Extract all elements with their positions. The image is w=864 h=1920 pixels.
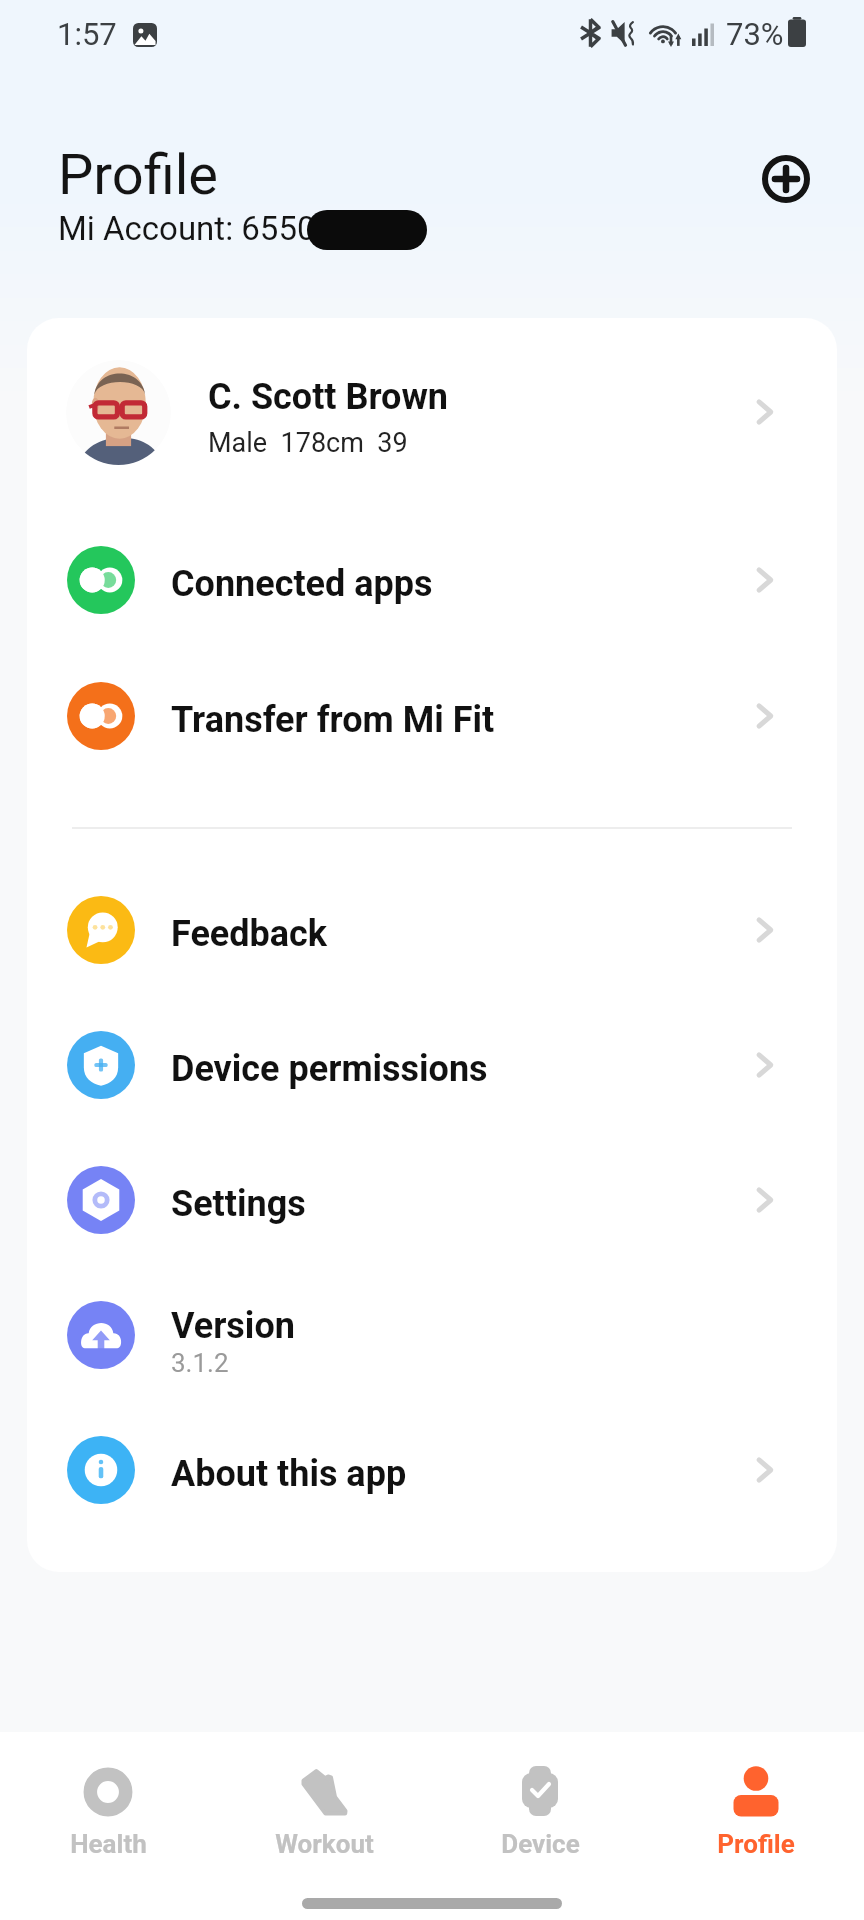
staticText: Health bbox=[70, 1829, 147, 1859]
button[interactable]: About this app bbox=[27, 1402, 837, 1537]
staticText: Settings bbox=[171, 1183, 306, 1225]
button[interactable]: Settings bbox=[27, 1132, 837, 1267]
staticText: 3.1.2 bbox=[171, 1348, 229, 1378]
button[interactable]: Version bbox=[27, 1267, 837, 1402]
button[interactable]: Add bbox=[754, 147, 818, 211]
staticText: 1:57 bbox=[57, 16, 117, 52]
staticText: Transfer from Mi Fit bbox=[171, 699, 495, 741]
staticText: Version bbox=[171, 1305, 295, 1347]
staticText: Male 178cm 39 bbox=[208, 427, 408, 459]
staticText: Connected apps bbox=[171, 563, 433, 605]
staticText: Profile bbox=[717, 1829, 795, 1859]
button[interactable]: Feedback bbox=[27, 862, 837, 997]
staticText: Workout bbox=[275, 1829, 374, 1859]
staticText: About this app bbox=[171, 1453, 407, 1495]
button[interactable]: C. Scott Brown bbox=[27, 318, 837, 506]
button[interactable]: Workout bbox=[216, 1732, 432, 1887]
staticText: Profile bbox=[58, 142, 219, 208]
button[interactable]: Device bbox=[432, 1732, 648, 1887]
button[interactable]: Health bbox=[0, 1732, 216, 1887]
staticText: Feedback bbox=[171, 913, 328, 955]
staticText: C. Scott Brown bbox=[208, 376, 449, 418]
staticText: 73% bbox=[726, 16, 784, 52]
staticText: Mi Account: 6550 bbox=[58, 209, 316, 248]
staticText: Device bbox=[501, 1829, 580, 1859]
button[interactable]: Connected apps bbox=[27, 512, 837, 647]
button[interactable]: Transfer from Mi Fit bbox=[27, 648, 837, 783]
button[interactable]: Device permissions bbox=[27, 997, 837, 1132]
staticText: Device permissions bbox=[171, 1048, 488, 1090]
button[interactable]: Profile bbox=[648, 1732, 864, 1887]
